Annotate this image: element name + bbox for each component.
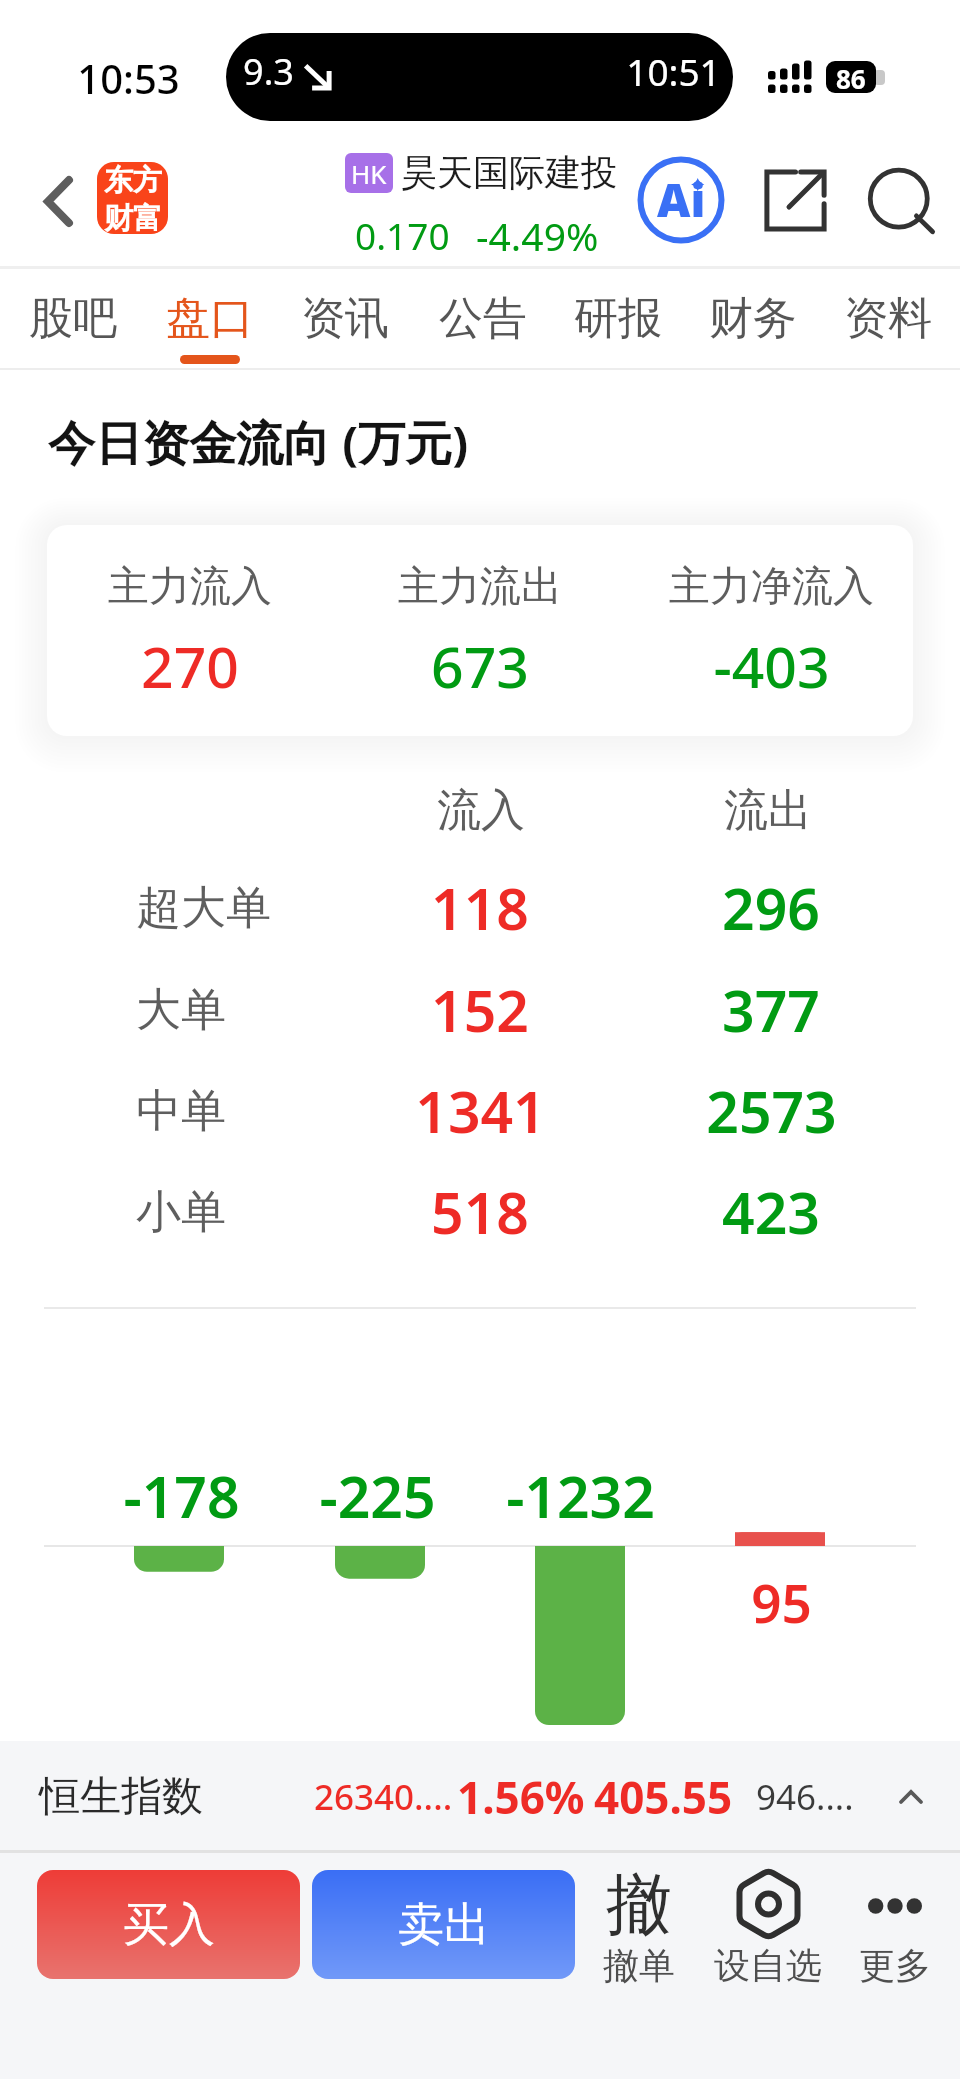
staticText: 买入 [123,1896,215,1954]
staticText: -1232 [506,1457,655,1535]
staticText: 405.55 [594,1767,733,1827]
button[interactable]: 公告 [421,265,545,368]
staticText: 恒生指数 [39,1771,203,1823]
staticText: 423 [722,1173,820,1251]
button[interactable]: 撤 [559,1863,719,1988]
button[interactable]: 股吧 [11,265,135,368]
staticText: 盘口 [166,291,254,346]
staticText: 主力净流入 [669,561,874,613]
staticText: 1341 [415,1072,546,1150]
staticText: 财务 [709,291,797,346]
staticText: 26340.... [314,1773,453,1821]
staticText: 资讯 [301,291,389,346]
button[interactable]: Back [8,141,100,261]
staticText: 0.170 [355,210,450,260]
staticText: 撤单 [603,1943,675,1988]
staticText: 流出 [724,783,812,838]
staticText: 2573 [706,1072,837,1150]
staticText: -403 [713,627,830,705]
staticText: 资料 [844,291,932,346]
staticText: 昊天国际建投 [401,150,617,195]
staticText: 1.56% [457,1767,585,1827]
button[interactable]: 设自选 [688,1863,848,1988]
staticText: 86 [836,61,866,93]
staticText: 673 [431,627,529,705]
button[interactable]: 资料 [826,265,950,368]
button[interactable]: 研报 [556,265,680,368]
staticText: 152 [431,971,529,1049]
staticText: 设自选 [714,1943,822,1988]
staticText: 主力流入 [108,561,272,613]
staticText: 377 [722,971,820,1049]
staticText: 财富 [104,200,162,234]
staticText: 大单 [136,982,226,1039]
button[interactable]: 资讯 [283,265,407,368]
button[interactable]: 更多 [815,1863,960,1988]
button[interactable]: 买入 [37,1870,300,1979]
button[interactable]: 盘口 [148,265,272,368]
staticText: 118 [431,869,529,947]
staticText: 中单 [136,1083,226,1140]
button[interactable]: Search [859,161,945,247]
staticText: HK [351,156,387,191]
staticText: 流入 [437,783,525,838]
staticText: 10:53 [77,51,180,105]
staticText: 946.... [756,1773,854,1821]
staticText: 10:51 [626,46,721,96]
staticText: -225 [319,1457,436,1535]
staticText: 撤 [606,1863,672,1939]
staticText: 296 [722,869,820,947]
staticText: 小单 [136,1184,226,1241]
button[interactable]: East Money home [97,162,168,234]
staticText: 更多 [859,1943,931,1988]
staticText: 9.3 [243,47,294,96]
staticText: Ai [657,168,706,231]
staticText: 95 [751,1566,812,1638]
staticText: -178 [123,1457,240,1535]
button[interactable]: AI assistant [636,155,726,245]
staticText: 270 [141,627,239,705]
button[interactable]: 财务 [691,265,815,368]
staticText: 股吧 [29,291,117,346]
staticText: 公告 [439,291,527,346]
staticText: 研报 [574,291,662,346]
staticText: 卖出 [398,1896,490,1954]
staticText: 主力流出 [398,561,562,613]
button[interactable]: Share [752,157,838,243]
staticText: 518 [431,1173,529,1251]
button[interactable]: 恒生指数 [0,1741,960,1853]
button[interactable]: 卖出 [312,1870,575,1979]
staticText: 东方 [104,162,162,199]
staticText: -4.49% [476,209,599,262]
staticText: 超大单 [136,880,271,937]
staticText: 今日资金流向 (万元) [48,410,469,474]
